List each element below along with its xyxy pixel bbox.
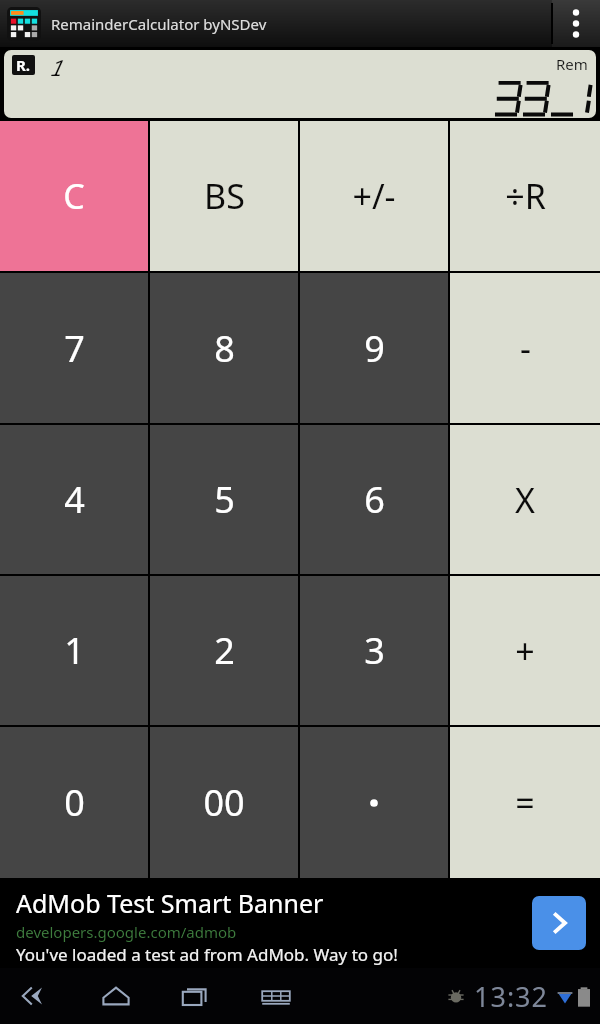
- button[interactable]: Recent apps: [174, 974, 218, 1018]
- button[interactable]: 5: [150, 425, 298, 574]
- staticText: AdMob Test Smart Banner: [16, 886, 324, 920]
- button[interactable]: Back: [14, 974, 58, 1018]
- staticText: +: [515, 628, 535, 674]
- staticText: ÷R: [505, 173, 546, 219]
- staticText: RemainderCalculator byNSDev: [51, 14, 267, 34]
- staticText: =: [515, 780, 535, 826]
- staticText: 6: [364, 475, 385, 524]
- staticText: 0: [64, 778, 85, 827]
- staticText: 9: [364, 324, 385, 373]
- button[interactable]: 8: [150, 273, 298, 423]
- button[interactable]: +: [450, 576, 600, 725]
- button[interactable]: Home: [94, 974, 138, 1018]
- staticText: 8: [214, 324, 235, 373]
- button[interactable]: Keyboard: [254, 974, 298, 1018]
- button[interactable]: 9: [300, 273, 448, 423]
- button[interactable]: [300, 727, 448, 878]
- button[interactable]: 4: [0, 425, 148, 574]
- button[interactable]: 2: [150, 576, 298, 725]
- staticText: -: [520, 325, 531, 371]
- button[interactable]: 6: [300, 425, 448, 574]
- button[interactable]: 00: [150, 727, 298, 878]
- staticText: +/-: [352, 173, 396, 219]
- button[interactable]: AdMob Test Smart Banner: [0, 878, 600, 968]
- staticText: Rem: [556, 54, 588, 74]
- staticText: developers.google.com/admob: [16, 922, 237, 942]
- button[interactable]: X: [450, 425, 600, 574]
- button[interactable]: 0: [0, 727, 148, 878]
- button[interactable]: =: [450, 727, 600, 878]
- button[interactable]: +/-: [300, 121, 448, 271]
- staticText: You've loaded a test ad from AdMob. Way …: [16, 943, 398, 966]
- button[interactable]: BS: [150, 121, 298, 271]
- button[interactable]: 3: [300, 576, 448, 725]
- button[interactable]: C: [0, 121, 148, 271]
- staticText: 00: [203, 778, 245, 827]
- staticText: 13:32: [474, 978, 549, 1015]
- button[interactable]: ÷R: [450, 121, 600, 271]
- staticText: 1: [48, 52, 62, 82]
- button[interactable]: -: [450, 273, 600, 423]
- button[interactable]: More options: [552, 0, 600, 47]
- staticText: 5: [214, 475, 235, 524]
- staticText: 2: [214, 626, 235, 675]
- staticText: 1: [64, 626, 85, 675]
- staticText: 7: [64, 324, 85, 373]
- staticText: BS: [204, 173, 245, 219]
- staticText: C: [63, 173, 85, 219]
- staticText: 4: [64, 475, 85, 524]
- staticText: R.: [16, 55, 31, 75]
- button[interactable]: 1: [0, 576, 148, 725]
- staticText: 3: [364, 626, 385, 675]
- button[interactable]: Open ad: [532, 896, 586, 950]
- button[interactable]: 7: [0, 273, 148, 423]
- staticText: X: [515, 477, 535, 523]
